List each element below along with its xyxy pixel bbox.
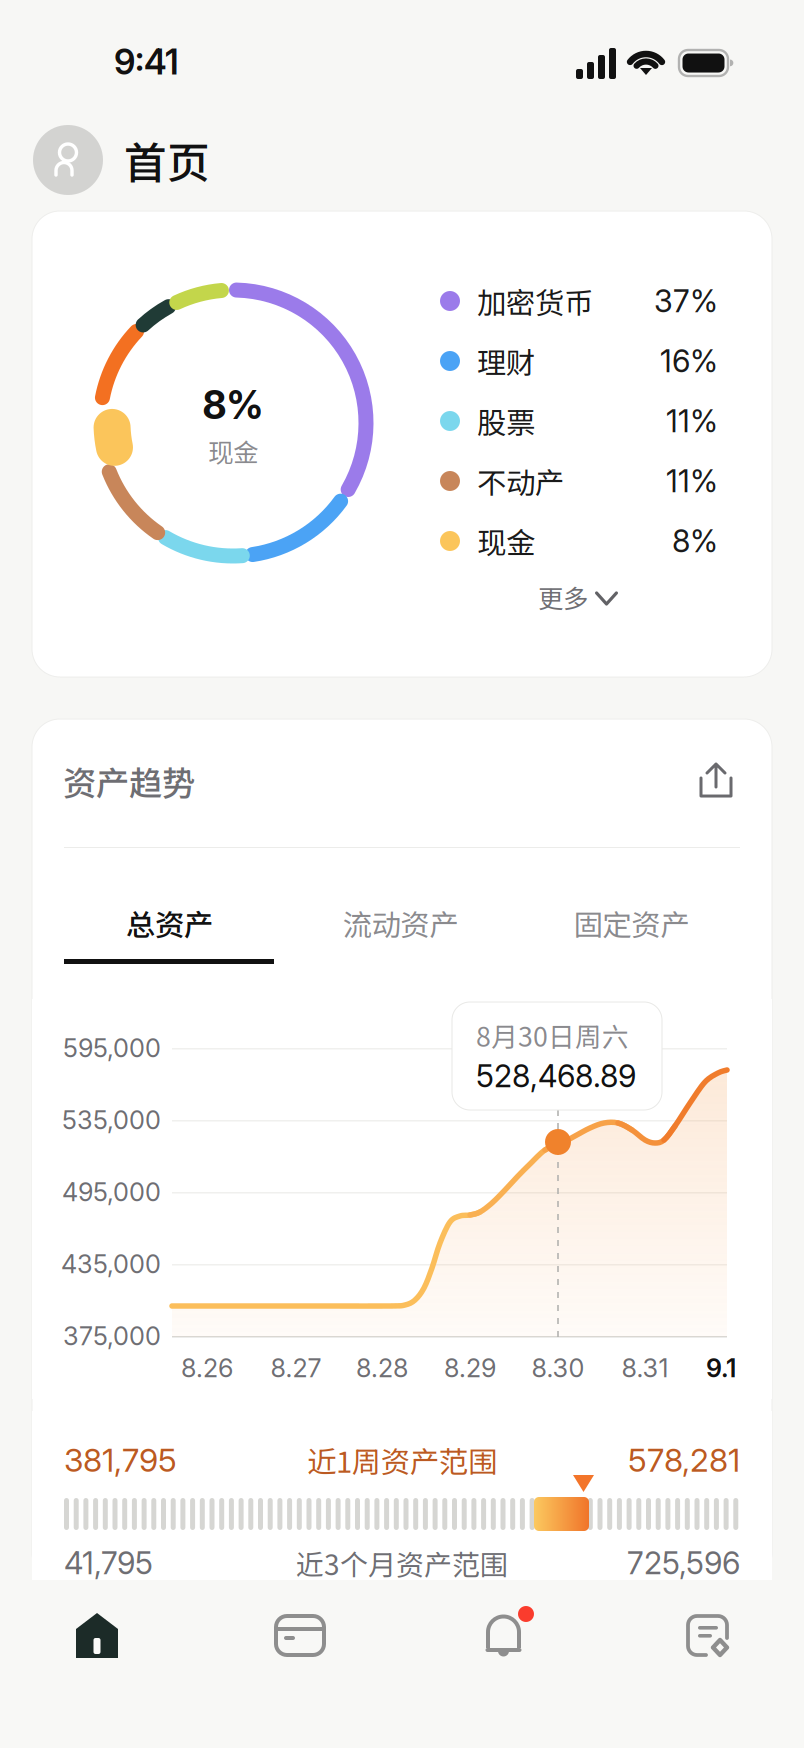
staticText: 理财: [477, 340, 535, 382]
staticText: 8.31: [621, 1353, 668, 1383]
button[interactable]: 更多: [526, 569, 654, 625]
staticText: 现金: [208, 433, 258, 469]
staticText: 近1周资产范围: [307, 1439, 497, 1481]
staticText: 375,000: [63, 1321, 161, 1351]
staticText: 595,000: [63, 1033, 161, 1063]
staticText: 股票: [477, 400, 535, 442]
staticText: 总资产: [126, 902, 213, 944]
staticText: 更多: [538, 579, 588, 615]
staticText: 8.26: [181, 1353, 233, 1383]
staticText: 9:41: [114, 41, 179, 83]
staticText: 535,000: [62, 1105, 161, 1135]
staticText: 不动产: [477, 460, 564, 502]
staticText: 加密货币: [477, 280, 593, 322]
staticText: 37%: [654, 282, 718, 319]
staticText: 8.27: [270, 1353, 321, 1383]
staticText: 现金: [477, 520, 535, 562]
staticText: 381,795: [64, 1441, 177, 1479]
button[interactable]: 个人中心: [33, 125, 103, 195]
button[interactable]: 总资产: [63, 885, 276, 995]
button[interactable]: 通知: [402, 1580, 603, 1700]
button[interactable]: 分享: [696, 759, 740, 807]
staticText: 9.1: [706, 1353, 736, 1383]
staticText: 8%: [672, 522, 718, 559]
staticText: 528,468.89: [476, 1057, 636, 1094]
staticText: 11%: [666, 402, 718, 439]
staticText: 725,596: [627, 1544, 740, 1581]
staticText: 8%: [202, 382, 263, 428]
staticText: 8.30: [531, 1353, 584, 1383]
staticText: 近3个月资产范围: [296, 1543, 508, 1583]
button[interactable]: 固定资产: [525, 885, 738, 995]
staticText: 16%: [660, 342, 718, 379]
staticText: 流动资产: [342, 902, 458, 944]
staticText: 固定资产: [573, 902, 689, 944]
button[interactable]: 账单: [603, 1580, 804, 1700]
staticText: 资产趋势: [63, 757, 195, 805]
button[interactable]: 首页: [0, 1580, 201, 1700]
button[interactable]: 流动资产: [294, 885, 507, 995]
button[interactable]: 卡片: [201, 1580, 402, 1700]
staticText: 11%: [666, 462, 718, 499]
staticText: 435,000: [61, 1249, 161, 1279]
staticText: 578,281: [628, 1441, 740, 1479]
staticText: 8月30日周六: [476, 1016, 629, 1054]
staticText: 495,000: [62, 1177, 161, 1207]
staticText: 8.28: [356, 1353, 408, 1383]
staticText: 首页: [124, 129, 210, 191]
staticText: 8.29: [444, 1353, 496, 1383]
staticText: 41,795: [64, 1544, 153, 1581]
